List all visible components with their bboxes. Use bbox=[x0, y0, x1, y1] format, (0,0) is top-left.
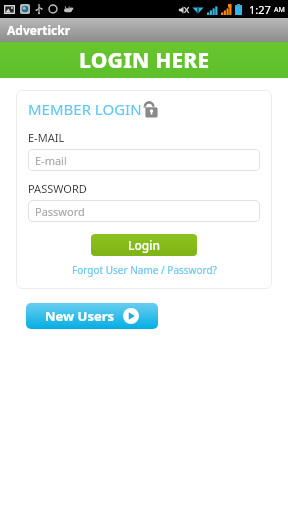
button[interactable]: Login bbox=[91, 234, 197, 256]
button[interactable]: Forgot User Name / Password? bbox=[28, 263, 260, 277]
staticText: AM bbox=[274, 5, 285, 15]
staticText: PASSWORD bbox=[28, 181, 87, 196]
staticText: Password bbox=[35, 204, 85, 219]
staticText: Forgot User Name / Password? bbox=[72, 263, 217, 277]
other: Lock bbox=[143, 98, 160, 120]
staticText: LOGIN HERE bbox=[79, 46, 210, 75]
staticText: Advertickr bbox=[7, 22, 71, 38]
staticText: E-MAIL bbox=[28, 130, 65, 145]
button[interactable]: Password bbox=[28, 200, 260, 222]
staticText: 1:27 bbox=[249, 2, 271, 17]
button[interactable]: New Users bbox=[26, 303, 158, 329]
staticText: New Users bbox=[45, 307, 115, 325]
staticText: MEMBER LOGIN bbox=[28, 99, 142, 119]
staticText: Login bbox=[128, 237, 160, 253]
staticText: E-mail bbox=[35, 153, 67, 168]
button[interactable]: E-mail bbox=[28, 149, 260, 171]
